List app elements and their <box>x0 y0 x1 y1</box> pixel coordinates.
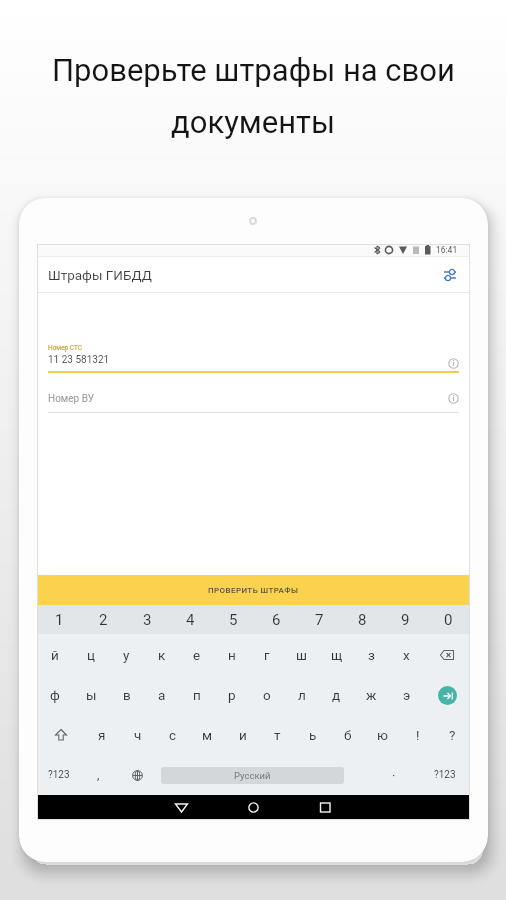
button[interactable]: и <box>225 715 260 755</box>
button[interactable]: р <box>214 675 249 715</box>
button[interactable]: 5 <box>212 605 255 634</box>
button[interactable]: ц <box>73 634 109 675</box>
staticText: ч <box>134 727 142 743</box>
button[interactable]: ч <box>120 715 155 755</box>
button[interactable]: ? <box>435 715 470 755</box>
button[interactable]: ?123 <box>37 755 81 795</box>
staticText: ?123 <box>48 769 70 781</box>
staticText: х <box>403 647 410 663</box>
button[interactable]: м <box>190 715 225 755</box>
button[interactable]: х <box>389 634 424 675</box>
staticText: в <box>123 687 131 703</box>
staticText: д <box>332 687 341 703</box>
staticText: л <box>298 687 306 703</box>
staticText: ц <box>87 647 96 663</box>
staticText: 6 <box>272 611 281 629</box>
button[interactable] <box>424 675 470 715</box>
button[interactable]: 2 <box>81 605 125 634</box>
staticText: документы <box>171 104 336 140</box>
button[interactable]: 9 <box>384 605 427 634</box>
button[interactable] <box>115 755 159 795</box>
button[interactable]: 0 <box>427 605 470 634</box>
button[interactable]: а <box>144 675 179 715</box>
staticText: м <box>202 727 213 743</box>
button[interactable]: с <box>155 715 190 755</box>
button[interactable]: ! <box>400 715 435 755</box>
button[interactable]: н <box>214 634 249 675</box>
button[interactable]: ы <box>73 675 109 715</box>
staticText: э <box>403 687 411 703</box>
button[interactable]: т <box>260 715 295 755</box>
button[interactable]: л <box>284 675 319 715</box>
button[interactable]: о <box>249 675 284 715</box>
button[interactable]: 8 <box>341 605 384 634</box>
staticText: Номер ВУ <box>48 393 95 405</box>
staticText: ! <box>416 727 420 743</box>
button[interactable] <box>37 715 84 755</box>
staticText: а <box>158 687 166 703</box>
button[interactable]: ш <box>284 634 319 675</box>
button[interactable]: , <box>81 755 115 795</box>
button[interactable]: Номер СТС <box>48 344 459 373</box>
button[interactable]: 4 <box>169 605 212 634</box>
button[interactable] <box>441 266 459 284</box>
button[interactable]: ф <box>37 675 73 715</box>
button[interactable]: в <box>109 675 144 715</box>
button[interactable]: 7 <box>298 605 341 634</box>
staticText: 16:41 <box>436 245 458 255</box>
button[interactable]: я <box>84 715 120 755</box>
button[interactable]: Номер ВУ <box>48 393 459 413</box>
button[interactable]: з <box>354 634 389 675</box>
button[interactable]: г <box>249 634 284 675</box>
button[interactable]: к <box>144 634 179 675</box>
staticText: 5 <box>229 611 238 629</box>
button[interactable]: · <box>346 755 420 795</box>
button[interactable]: д <box>319 675 354 715</box>
staticText: Штрафы ГИБДД <box>48 267 152 283</box>
staticText: ы <box>86 687 97 703</box>
staticText: е <box>193 647 201 663</box>
button[interactable]: ю <box>365 715 400 755</box>
button[interactable]: ПРОВЕРИТЬ ШТРАФЫ <box>37 575 470 605</box>
button[interactable]: ж <box>354 675 389 715</box>
staticText: , <box>97 768 100 782</box>
staticText: р <box>228 687 236 703</box>
button[interactable]: 1 <box>37 605 81 634</box>
button[interactable]: п <box>179 675 214 715</box>
staticText: · <box>392 768 396 783</box>
staticText: ? <box>449 727 456 743</box>
staticText: Проверьте штрафы на свои <box>52 52 455 88</box>
staticText: п <box>193 687 201 703</box>
staticText: ПРОВЕРИТЬ ШТРАФЫ <box>208 586 299 595</box>
button[interactable]: э <box>389 675 424 715</box>
staticText: 2 <box>99 611 108 629</box>
staticText: Русский <box>234 770 271 781</box>
staticText: 3 <box>143 611 152 629</box>
staticText: б <box>344 727 352 743</box>
button[interactable]: е <box>179 634 214 675</box>
staticText: ю <box>377 727 389 743</box>
staticText: н <box>228 647 236 663</box>
staticText: 8 <box>358 611 367 629</box>
staticText: г <box>264 647 270 663</box>
staticText: 11 23 581321 <box>48 354 110 366</box>
button[interactable]: 3 <box>125 605 169 634</box>
button[interactable]: й <box>37 634 73 675</box>
staticText: ж <box>366 687 377 703</box>
staticText: ь <box>309 727 317 743</box>
staticText: ш <box>296 647 307 663</box>
staticText: 9 <box>401 611 410 629</box>
staticText: 0 <box>444 611 453 629</box>
button[interactable]: ь <box>295 715 330 755</box>
button[interactable]: у <box>109 634 144 675</box>
staticText: Номер СТС <box>48 344 83 352</box>
button[interactable]: ?123 <box>420 755 470 795</box>
staticText: 7 <box>315 611 324 629</box>
staticText: у <box>123 647 130 663</box>
button[interactable]: щ <box>319 634 354 675</box>
button[interactable]: б <box>330 715 365 755</box>
button[interactable] <box>424 634 470 675</box>
button[interactable]: Русский <box>161 767 344 784</box>
staticText: щ <box>331 647 343 663</box>
button[interactable]: 6 <box>255 605 298 634</box>
